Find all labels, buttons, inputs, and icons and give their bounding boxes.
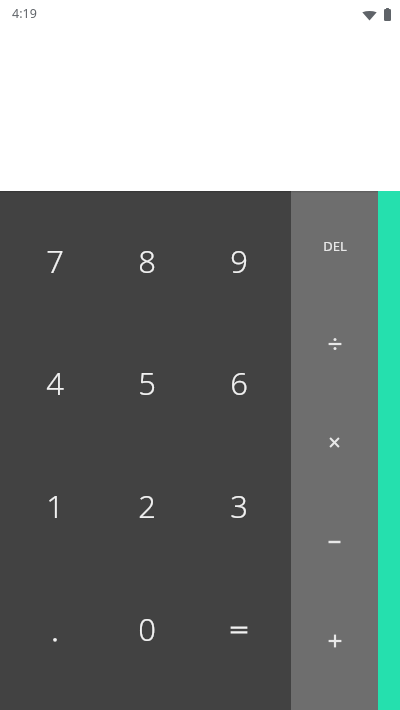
button[interactable]: 7 xyxy=(8,200,101,322)
staticText: 4:19 xyxy=(12,5,37,22)
button[interactable]: Delete xyxy=(291,197,378,295)
staticText: 7 xyxy=(46,240,64,282)
staticText: 1 xyxy=(46,485,64,527)
button[interactable]: 8 xyxy=(101,200,193,322)
staticText: 8 xyxy=(138,240,156,282)
staticText: 3 xyxy=(230,485,248,527)
button[interactable]: 1 xyxy=(8,444,101,567)
staticText: 9 xyxy=(230,240,248,282)
button[interactable]: 6 xyxy=(193,322,285,444)
button[interactable] xyxy=(193,567,285,690)
button[interactable]: 3 xyxy=(193,444,285,567)
staticText: 5 xyxy=(138,362,156,404)
button[interactable]: 4 xyxy=(8,322,101,444)
staticText: 2 xyxy=(138,485,156,527)
button[interactable]: 0 xyxy=(101,567,193,690)
button[interactable]: Multiply xyxy=(291,393,378,492)
button[interactable]: Divide xyxy=(291,295,378,393)
button[interactable]: Add xyxy=(291,591,378,690)
button[interactable]: 2 xyxy=(101,444,193,567)
staticText: 4 xyxy=(46,362,64,404)
button[interactable] xyxy=(8,567,101,690)
staticText: 6 xyxy=(230,362,248,404)
button[interactable]: Subtract xyxy=(291,492,378,591)
button[interactable]: 9 xyxy=(193,200,285,322)
button[interactable]: 5 xyxy=(101,322,193,444)
staticText: DEL xyxy=(323,237,347,255)
staticText: 0 xyxy=(138,608,156,650)
